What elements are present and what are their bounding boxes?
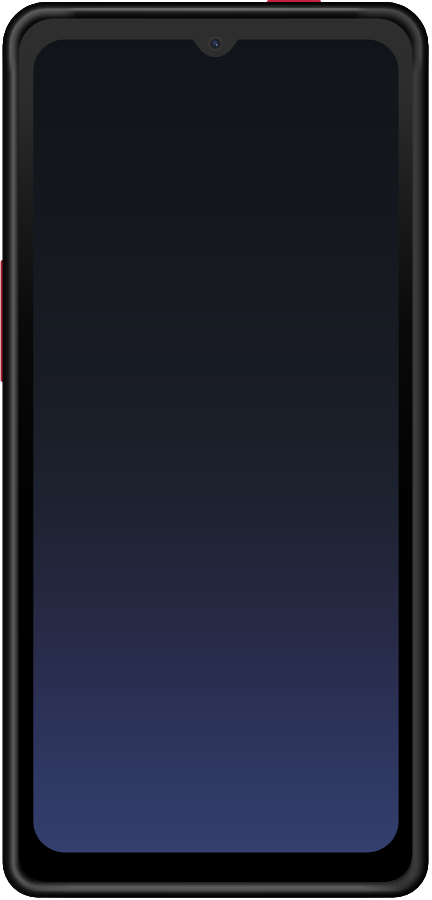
button[interactable]: Smartphone front view	[0, 0, 432, 900]
